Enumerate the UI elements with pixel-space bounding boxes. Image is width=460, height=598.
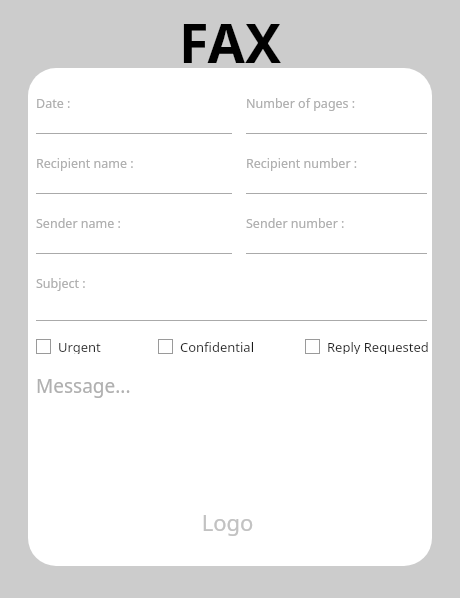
button[interactable]: Message... xyxy=(36,373,131,399)
staticText: Subject : xyxy=(36,275,86,292)
button[interactable]: Date : xyxy=(36,68,232,134)
button[interactable]: Logo xyxy=(32,507,423,537)
staticText: Recipient name : xyxy=(36,155,134,172)
staticText: Reply Requested xyxy=(327,338,429,354)
button[interactable]: Reply Requested xyxy=(305,338,429,354)
button[interactable]: Sender number : xyxy=(246,194,427,254)
button[interactable]: Number of pages : xyxy=(246,68,427,134)
button[interactable]: Sender name : xyxy=(36,194,232,254)
button[interactable]: Recipient name : xyxy=(36,134,232,194)
staticText: FAX xyxy=(0,5,460,79)
button[interactable]: Recipient number : xyxy=(246,134,427,194)
staticText: Sender name : xyxy=(36,215,121,232)
staticText: Sender number : xyxy=(246,215,345,232)
button[interactable]: Subject : xyxy=(36,254,427,321)
staticText: Number of pages : xyxy=(246,95,356,112)
button[interactable]: Confidential xyxy=(158,338,254,354)
staticText: Urgent xyxy=(58,338,101,354)
button[interactable]: Urgent xyxy=(36,338,101,354)
staticText: Recipient number : xyxy=(246,155,358,172)
staticText: Confidential xyxy=(180,338,254,354)
staticText: Date : xyxy=(36,95,71,112)
